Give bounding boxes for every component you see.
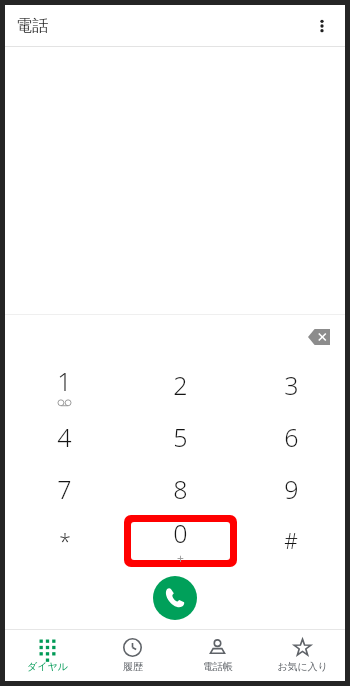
staticText: 8 xyxy=(173,472,188,506)
button[interactable]: Call xyxy=(153,576,197,620)
button[interactable]: 1 xyxy=(5,359,124,411)
staticText: 9 xyxy=(284,472,299,506)
staticText: # xyxy=(284,527,298,556)
button[interactable]: 3 xyxy=(237,359,345,411)
staticText: + xyxy=(177,550,184,566)
staticText: ダイヤル xyxy=(27,660,68,673)
button[interactable]: 6 xyxy=(237,411,345,463)
staticText: お気に入り xyxy=(277,660,328,673)
button[interactable]: 7 xyxy=(5,463,124,515)
button[interactable]: Backspace xyxy=(301,319,337,355)
staticText: 6 xyxy=(284,420,299,454)
button[interactable]: 5 xyxy=(124,411,237,463)
button[interactable]: お気に入り xyxy=(260,629,345,681)
button[interactable]: 2 xyxy=(124,359,237,411)
button[interactable]: 0 xyxy=(124,515,237,567)
staticText: * xyxy=(59,527,71,556)
staticText: 1 xyxy=(57,364,72,398)
staticText: 電話 xyxy=(16,16,48,36)
button[interactable]: # xyxy=(237,515,345,567)
button[interactable]: 電話帳 xyxy=(175,629,260,681)
button[interactable]: 履歴 xyxy=(90,629,175,681)
button[interactable]: ダイヤル xyxy=(5,629,90,681)
staticText: 電話帳 xyxy=(203,660,233,673)
staticText: 履歴 xyxy=(123,660,143,673)
staticText: 0 xyxy=(173,516,188,550)
button[interactable]: * xyxy=(5,515,124,567)
staticText: 2 xyxy=(173,368,188,402)
button[interactable]: 9 xyxy=(237,463,345,515)
button[interactable]: 4 xyxy=(5,411,124,463)
staticText: 5 xyxy=(173,420,188,454)
staticText: 4 xyxy=(57,420,72,454)
button[interactable]: 8 xyxy=(124,463,237,515)
staticText: 3 xyxy=(284,368,299,402)
staticText: 7 xyxy=(57,472,72,506)
button[interactable]: More options xyxy=(305,9,339,43)
